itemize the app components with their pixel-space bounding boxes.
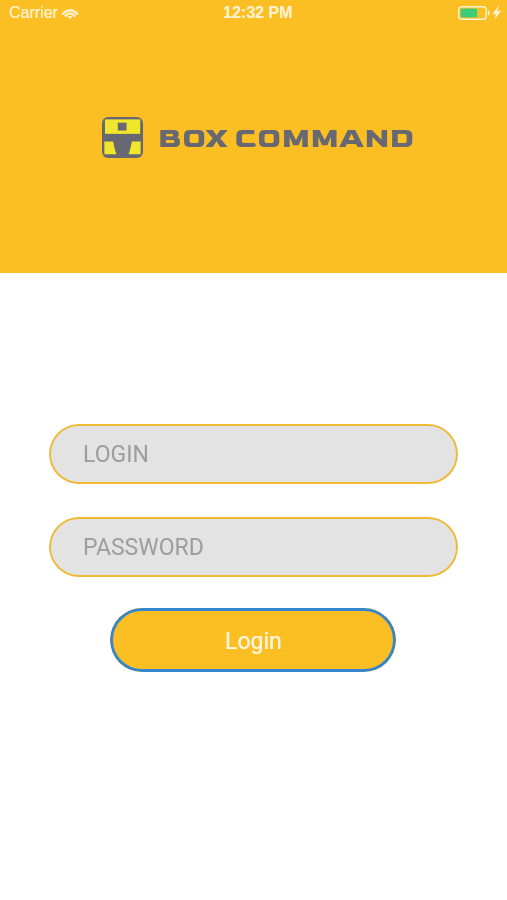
other: Wi-Fi <box>61 6 79 19</box>
staticText: Carrier <box>9 4 58 22</box>
other: Battery charging <box>458 6 491 20</box>
button[interactable]: PASSWORD <box>49 517 458 577</box>
button[interactable]: Login <box>110 608 396 672</box>
staticText: BOX COMMAND <box>158 121 415 156</box>
staticText: PASSWORD <box>83 534 204 561</box>
staticText: 12:32 PM <box>223 4 293 22</box>
staticText: Login <box>225 628 282 655</box>
button[interactable]: LOGIN <box>49 424 458 484</box>
staticText: LOGIN <box>83 441 149 468</box>
